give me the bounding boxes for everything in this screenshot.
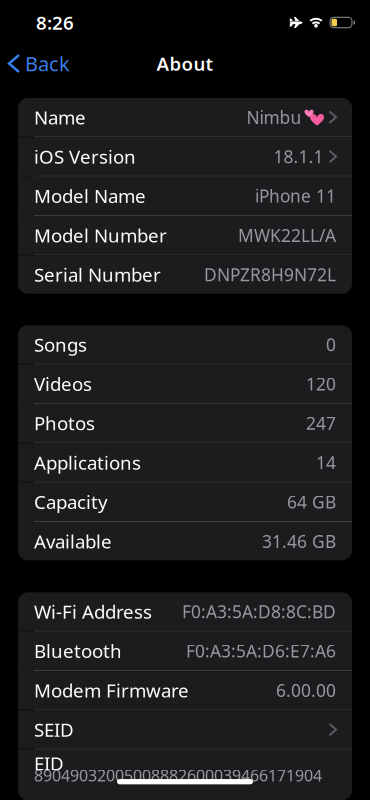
staticText: About — [156, 51, 213, 76]
staticText: iPhone 11 — [255, 184, 336, 207]
staticText: MWK22LL/A — [238, 224, 336, 247]
staticText: Serial Number — [34, 262, 161, 287]
staticText: Modem Firmware — [34, 678, 189, 703]
staticText: Model Number — [34, 223, 167, 248]
staticText: 18.1.1 — [273, 145, 323, 168]
staticText: 120 — [306, 372, 336, 395]
staticText: Photos — [34, 411, 95, 435]
staticText: Capacity — [34, 489, 108, 514]
staticText: 0 — [326, 333, 336, 356]
staticText: Name — [34, 105, 86, 130]
button[interactable]: Back — [0, 50, 70, 77]
staticText: Available — [34, 529, 112, 554]
staticText: F0:A3:5A:D8:8C:BD — [182, 600, 336, 623]
button[interactable]: iOS Version — [18, 137, 352, 176]
staticText: Wi-Fi Address — [34, 599, 152, 624]
staticText: 64 GB — [287, 490, 336, 513]
button[interactable]: Name — [18, 98, 352, 136]
staticText: 6.00.00 — [276, 679, 336, 702]
staticText: Videos — [34, 371, 92, 396]
staticText: iOS Version — [34, 144, 136, 169]
staticText: Back — [25, 50, 70, 77]
staticText: Nimbu — [246, 106, 301, 129]
staticText: DNPZR8H9N72L — [204, 263, 336, 286]
staticText: 89049032005008882600039466171904 — [34, 765, 322, 786]
staticText: Bluetooth — [34, 638, 122, 663]
button[interactable]: SEID — [18, 710, 352, 749]
staticText: 247 — [306, 412, 336, 435]
staticText: SEID — [34, 717, 74, 742]
staticText: F0:A3:5A:D6:E7:A6 — [186, 639, 336, 662]
staticText: 14 — [316, 451, 336, 474]
staticText: 8:26 — [36, 10, 74, 35]
staticText: 31.46 GB — [262, 530, 336, 553]
staticText: Songs — [34, 332, 87, 357]
staticText: Model Name — [34, 183, 146, 208]
staticText: Applications — [34, 450, 141, 475]
staticText: EID — [34, 751, 64, 776]
